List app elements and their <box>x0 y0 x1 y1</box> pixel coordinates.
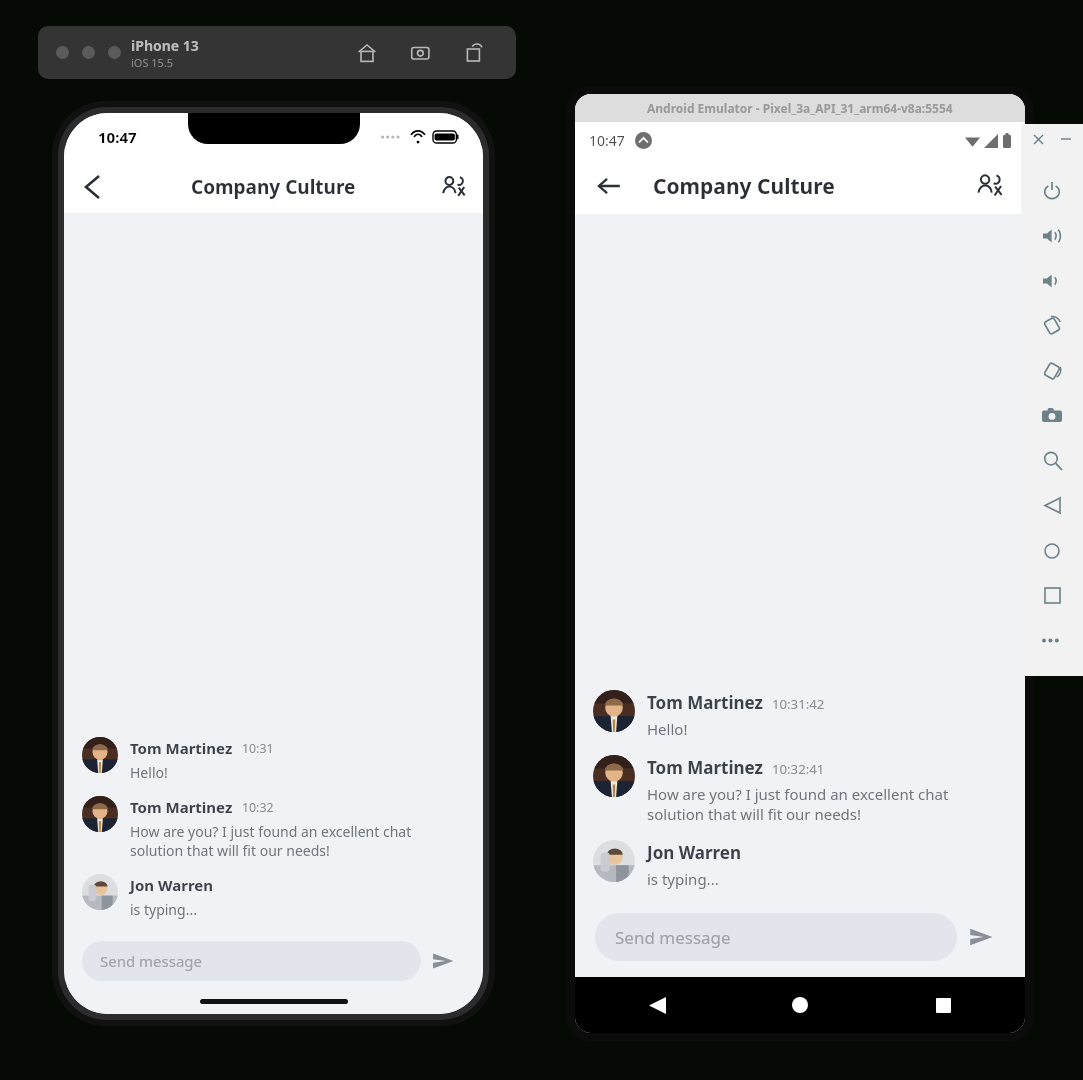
staticText: Android Emulator - Pixel_3a_API_31_arm64… <box>647 100 953 116</box>
button[interactable]: Back <box>635 983 679 1027</box>
button[interactable]: Send <box>957 913 1005 961</box>
button[interactable]: Send message <box>82 941 421 981</box>
button[interactable]: Members <box>967 164 1011 208</box>
staticText: iOS 15.5 <box>131 55 174 70</box>
button[interactable]: Send <box>421 939 465 983</box>
button[interactable]: Zoom <box>1021 438 1083 483</box>
staticText: 10:31 <box>242 740 274 757</box>
button[interactable]: Power <box>1021 168 1083 213</box>
staticText: Tom Martinez <box>647 691 763 714</box>
button[interactable]: Volume down <box>1021 258 1083 303</box>
button[interactable]: Home <box>352 38 382 68</box>
staticText: 10:32 <box>242 799 274 816</box>
button[interactable]: Rotate right <box>1021 348 1083 393</box>
staticText: Tom Martinez <box>130 797 233 817</box>
button[interactable]: Screenshot <box>406 38 436 68</box>
button[interactable]: Back <box>72 167 112 207</box>
staticText: Company Culture <box>191 174 356 200</box>
button[interactable]: Close <box>1028 129 1048 149</box>
button[interactable]: Rotate left <box>1021 303 1083 348</box>
staticText: iPhone 13 <box>131 36 199 55</box>
staticText: Tom Martinez <box>130 738 233 758</box>
button[interactable]: Jon Warren <box>64 872 483 921</box>
staticText: How are you? I just found an excellent c… <box>647 784 949 824</box>
button[interactable]: Recents <box>921 983 965 1027</box>
staticText: Jon Warren <box>130 875 213 895</box>
staticText: is typing... <box>647 869 719 889</box>
button[interactable]: Screenshot <box>1021 393 1083 438</box>
button[interactable]: Minimize <box>1056 129 1076 149</box>
button[interactable]: Tom Martinez <box>64 794 483 862</box>
button[interactable]: Overview <box>1021 573 1083 618</box>
button[interactable]: Members <box>433 167 473 207</box>
button[interactable]: Jon Warren <box>575 838 1025 891</box>
button[interactable]: Home <box>778 983 822 1027</box>
staticText: How are you? I just found an excellent c… <box>130 822 412 860</box>
button[interactable]: Tom Martinez <box>575 688 1025 741</box>
staticText: 10:47 <box>98 127 137 147</box>
button[interactable]: More <box>1021 618 1083 663</box>
staticText: Hello! <box>647 719 688 739</box>
staticText: Tom Martinez <box>647 756 763 779</box>
button[interactable]: Tom Martinez <box>575 753 1025 826</box>
button[interactable]: Back <box>1021 483 1083 528</box>
staticText: Jon Warren <box>647 841 742 864</box>
button[interactable]: Send message <box>595 913 957 961</box>
staticText: Company Culture <box>653 172 835 201</box>
staticText: is typing... <box>130 900 197 919</box>
staticText: 10:47 <box>589 131 625 150</box>
button[interactable]: Back <box>587 164 631 208</box>
button[interactable]: Tom Martinez <box>64 735 483 784</box>
button[interactable]: Volume up <box>1021 213 1083 258</box>
staticText: Hello! <box>130 763 168 782</box>
staticText: 10:32:41 <box>772 760 825 778</box>
button[interactable]: Record <box>460 38 490 68</box>
staticText: Send message <box>615 926 731 949</box>
button[interactable]: Home <box>1021 528 1083 573</box>
staticText: Send message <box>100 951 203 971</box>
staticText: 10:31:42 <box>772 695 825 713</box>
